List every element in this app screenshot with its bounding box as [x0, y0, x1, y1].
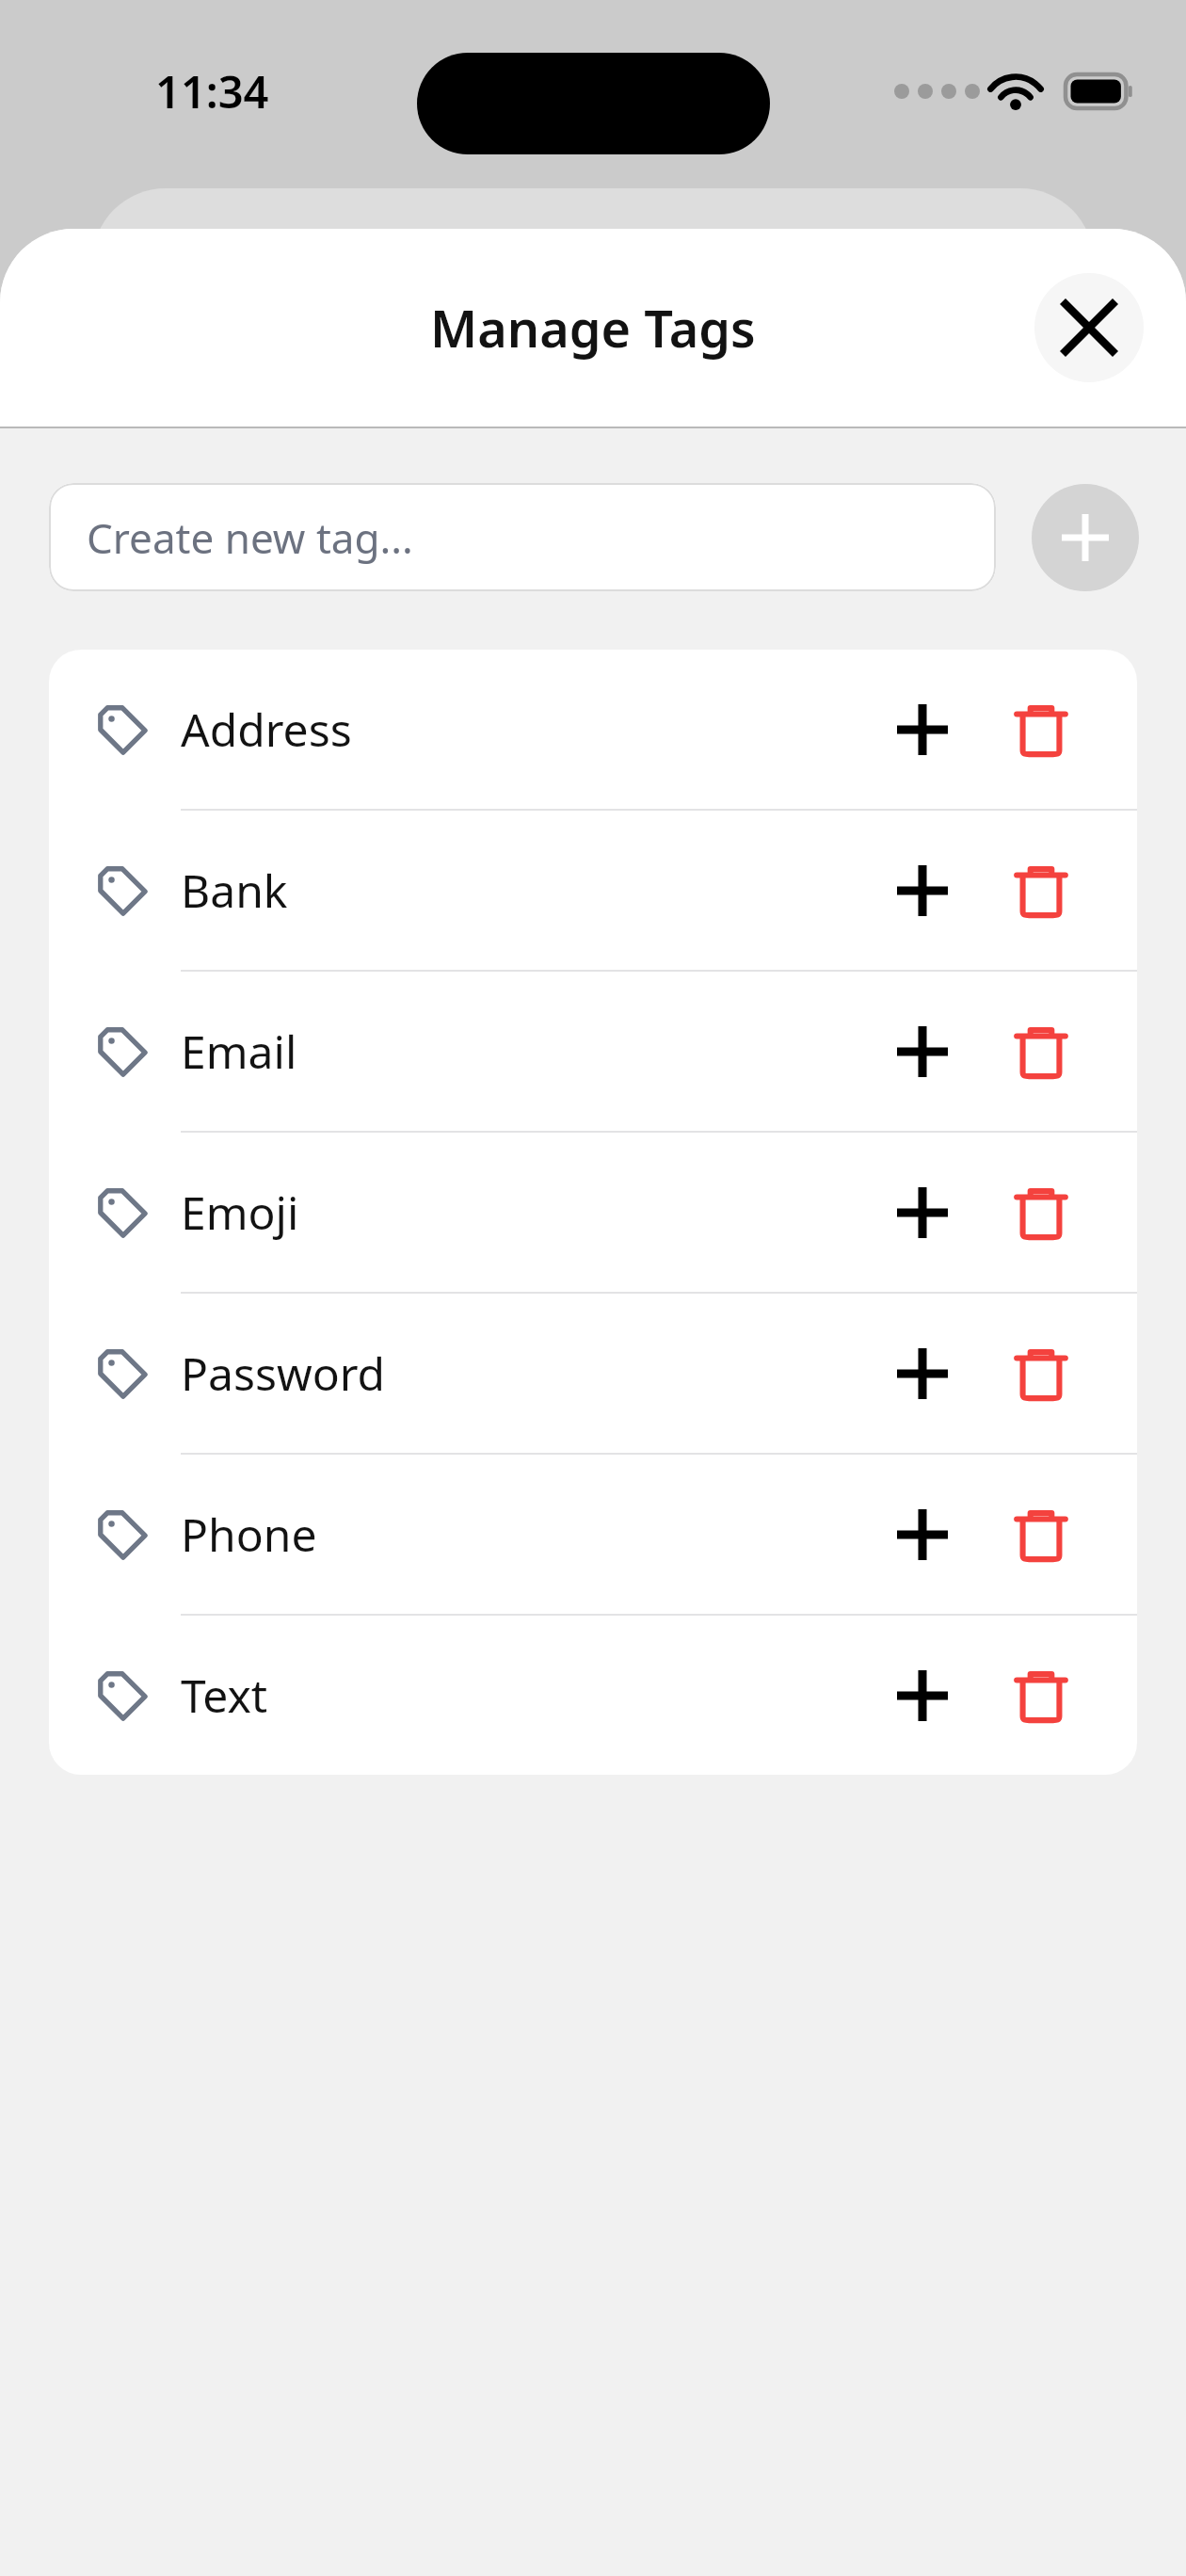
button[interactable]: Add Address [877, 684, 968, 775]
button[interactable]: Add Emoji [877, 1167, 968, 1258]
button[interactable]: Delete Email [996, 1006, 1086, 1097]
staticText: Create new tag... [87, 509, 413, 566]
staticText: Address [181, 699, 877, 760]
button[interactable]: Email [49, 972, 1137, 1131]
staticText: Bank [181, 860, 877, 921]
button[interactable]: Address [49, 650, 1137, 809]
staticText: Manage Tags [430, 293, 756, 362]
staticText: Text [181, 1665, 877, 1726]
staticText: Password [181, 1343, 877, 1404]
button[interactable]: Add Bank [877, 845, 968, 936]
button[interactable]: Delete Emoji [996, 1167, 1086, 1258]
staticText: Emoji [181, 1182, 877, 1243]
button[interactable]: Password [49, 1294, 1137, 1453]
button[interactable]: Emoji [49, 1133, 1137, 1292]
staticText: 11:34 [155, 61, 269, 121]
button[interactable]: Add Text [877, 1650, 968, 1741]
button[interactable]: Add Phone [877, 1489, 968, 1580]
staticText: Phone [181, 1504, 877, 1565]
button[interactable]: Add Email [877, 1006, 968, 1097]
button[interactable]: Delete Phone [996, 1489, 1086, 1580]
button[interactable]: Add Password [877, 1328, 968, 1419]
button[interactable]: Text [49, 1616, 1137, 1775]
button[interactable]: Delete Address [996, 684, 1086, 775]
button[interactable]: Close [1034, 273, 1144, 382]
button[interactable]: Add tag [1032, 484, 1139, 591]
button[interactable]: Delete Text [996, 1650, 1086, 1741]
button[interactable]: Bank [49, 811, 1137, 970]
button[interactable]: Create new tag... [49, 483, 996, 591]
staticText: Email [181, 1021, 877, 1082]
button[interactable]: Delete Password [996, 1328, 1086, 1419]
button[interactable]: Phone [49, 1455, 1137, 1614]
button[interactable]: Delete Bank [996, 845, 1086, 936]
